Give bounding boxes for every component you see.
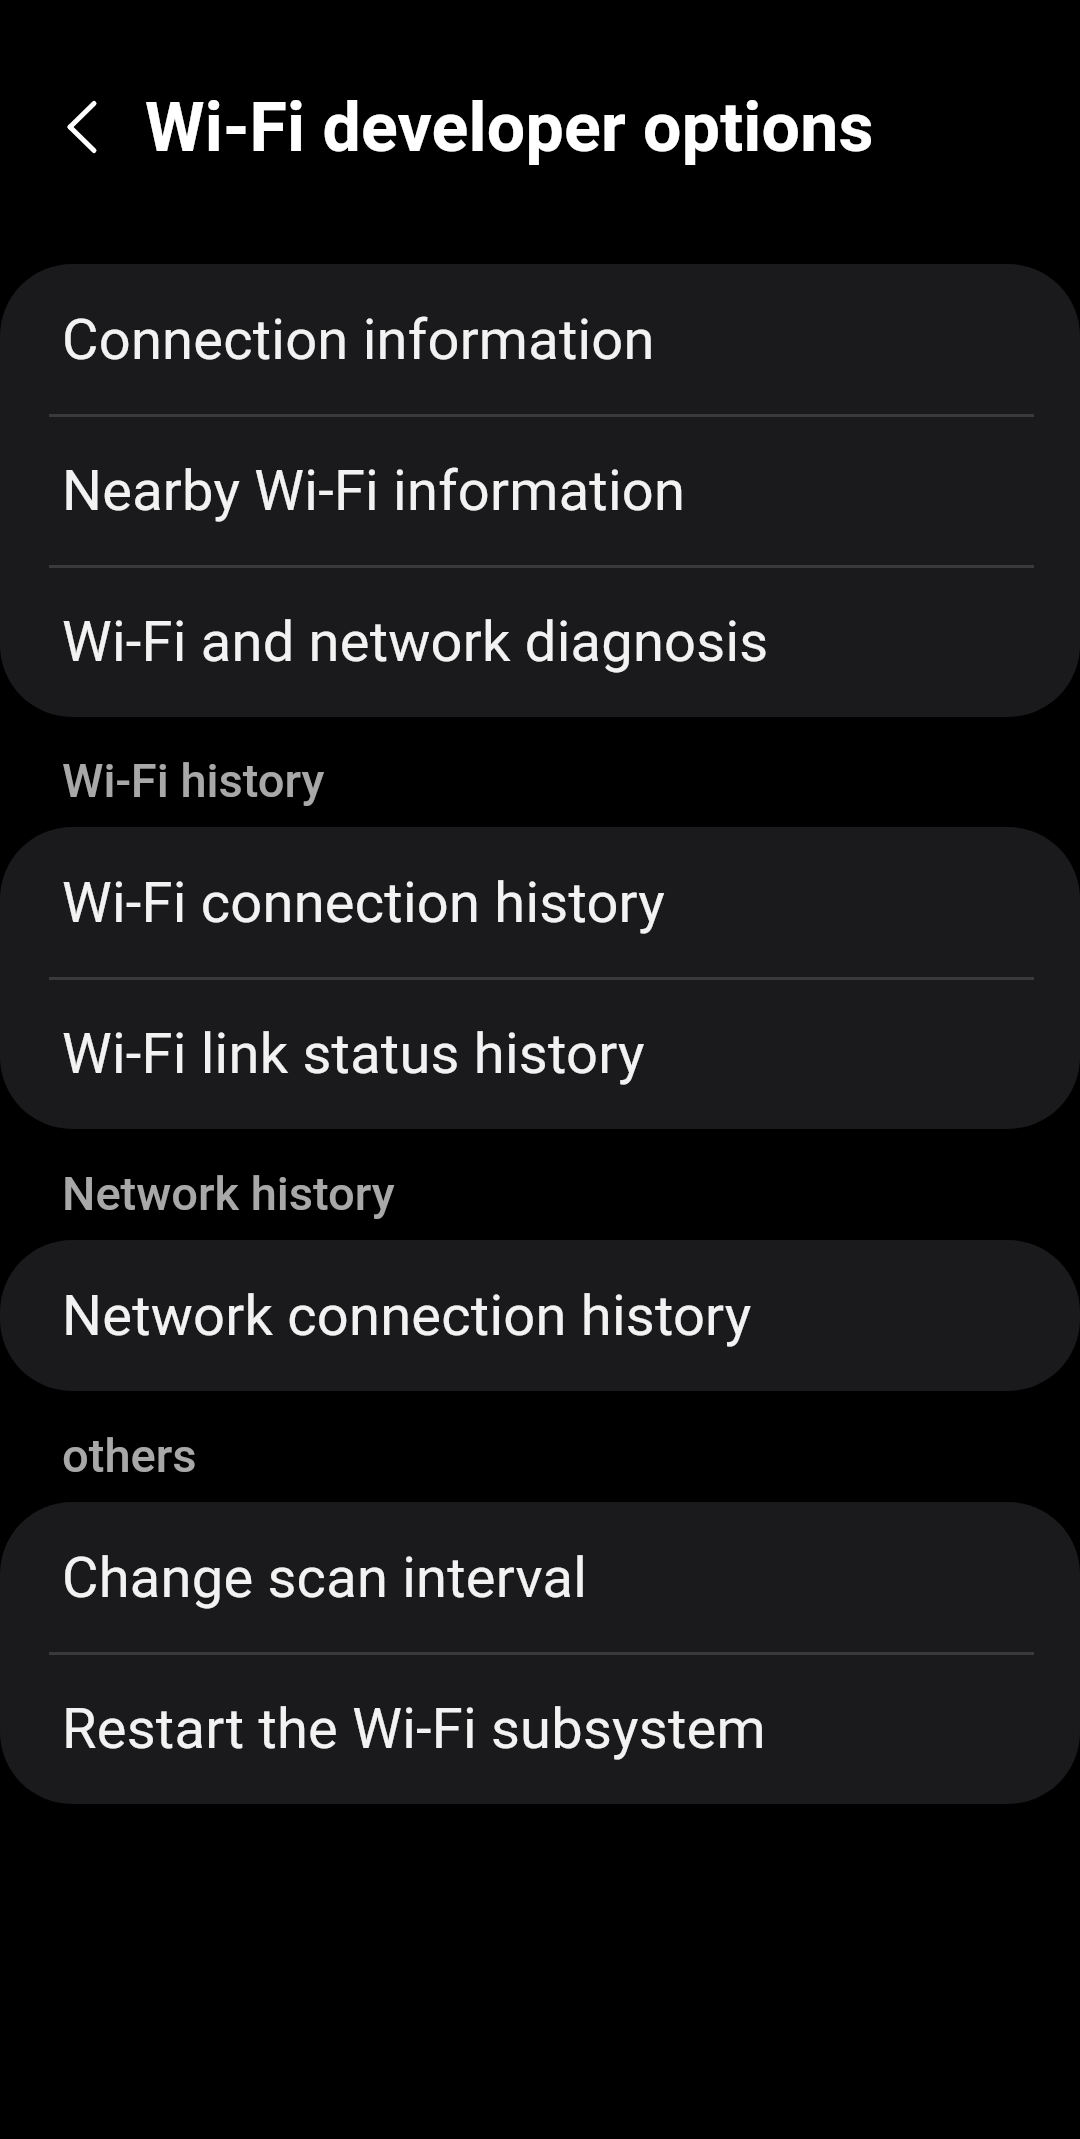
button[interactable]: Back <box>46 91 118 163</box>
button[interactable]: Wi-Fi and network diagnosis <box>0 566 1080 717</box>
staticText: Nearby Wi-Fi information <box>62 458 686 524</box>
staticText: Change scan interval <box>62 1545 588 1611</box>
button[interactable]: Restart the Wi-Fi subsystem <box>0 1653 1080 1804</box>
staticText: others <box>62 1428 197 1483</box>
button[interactable]: Network connection history <box>0 1240 1080 1391</box>
staticText: Wi-Fi developer options <box>145 88 874 168</box>
button[interactable]: Wi-Fi link status history <box>0 978 1080 1129</box>
staticText: Wi-Fi and network diagnosis <box>62 609 769 675</box>
staticText: Wi-Fi history <box>62 753 325 808</box>
staticText: Network history <box>62 1166 395 1221</box>
button[interactable]: Nearby Wi-Fi information <box>0 415 1080 566</box>
staticText: Connection information <box>62 307 655 373</box>
button[interactable]: Wi-Fi connection history <box>0 827 1080 978</box>
staticText: Restart the Wi-Fi subsystem <box>62 1696 766 1762</box>
staticText: Wi-Fi connection history <box>62 870 666 936</box>
staticText: Wi-Fi link status history <box>62 1021 645 1087</box>
button[interactable]: Connection information <box>0 264 1080 415</box>
button[interactable]: Change scan interval <box>0 1502 1080 1653</box>
staticText: Network connection history <box>62 1283 752 1349</box>
